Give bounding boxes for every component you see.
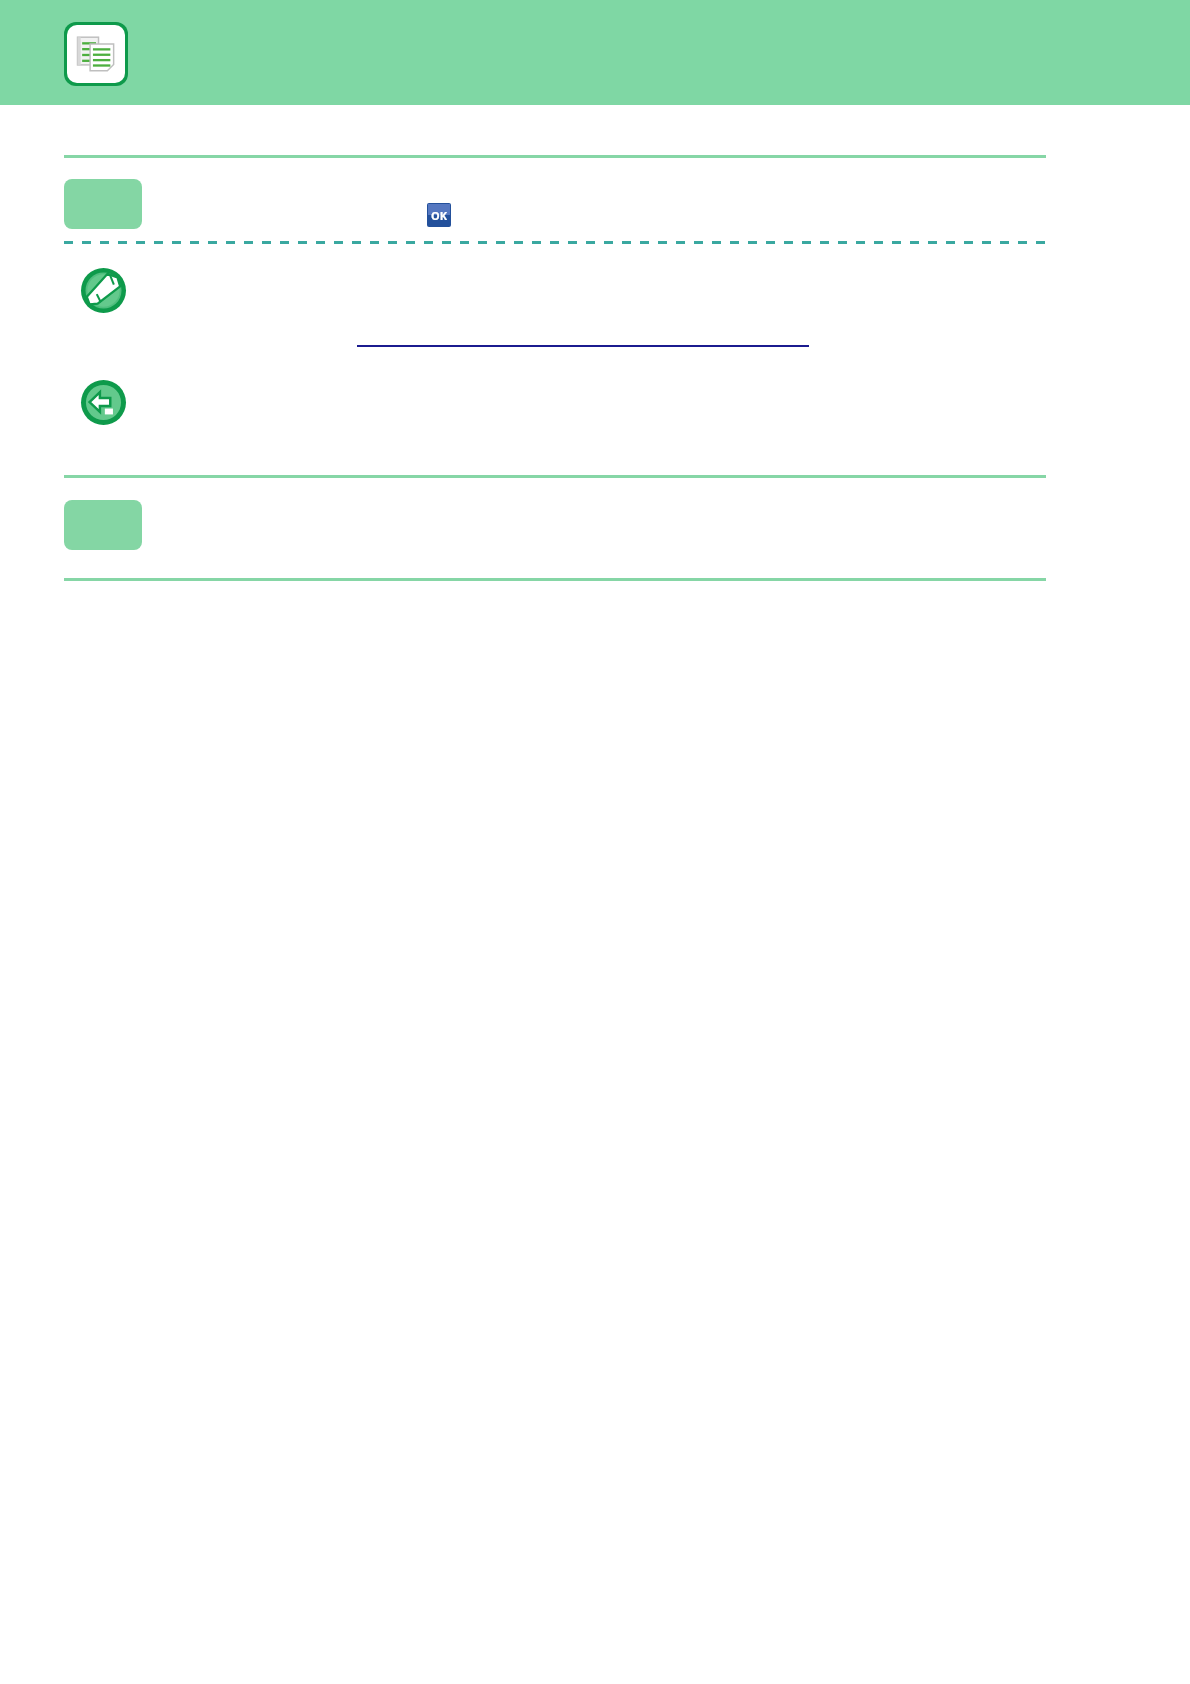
button[interactable]: Note bbox=[81, 268, 126, 313]
button[interactable]: OK bbox=[427, 203, 451, 227]
button[interactable]: Cancel bbox=[81, 380, 126, 425]
staticText: OK bbox=[431, 208, 448, 223]
button[interactable]: Copy bbox=[64, 22, 128, 86]
button[interactable]: Step 2 bbox=[64, 500, 142, 550]
button[interactable]: Step 1 bbox=[64, 179, 142, 229]
